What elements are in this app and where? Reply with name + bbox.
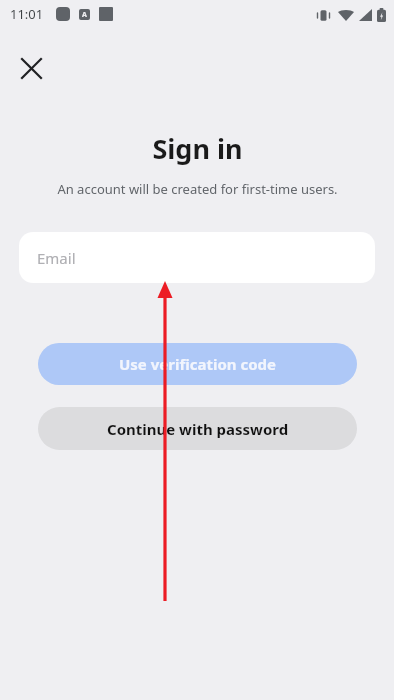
staticText: Continue with password	[107, 419, 289, 439]
staticText: Email	[37, 248, 76, 268]
staticText: A	[82, 10, 87, 20]
button[interactable]: Close	[10, 47, 52, 89]
button[interactable]: Use verification code	[38, 343, 357, 385]
button[interactable]: Email	[19, 232, 375, 283]
button[interactable]: Continue with password	[38, 407, 357, 450]
staticText: Sign in	[152, 130, 243, 167]
staticText: 11:01	[10, 5, 44, 23]
staticText: An account will be created for first-tim…	[57, 180, 338, 198]
staticText: Use verification code	[119, 354, 277, 374]
